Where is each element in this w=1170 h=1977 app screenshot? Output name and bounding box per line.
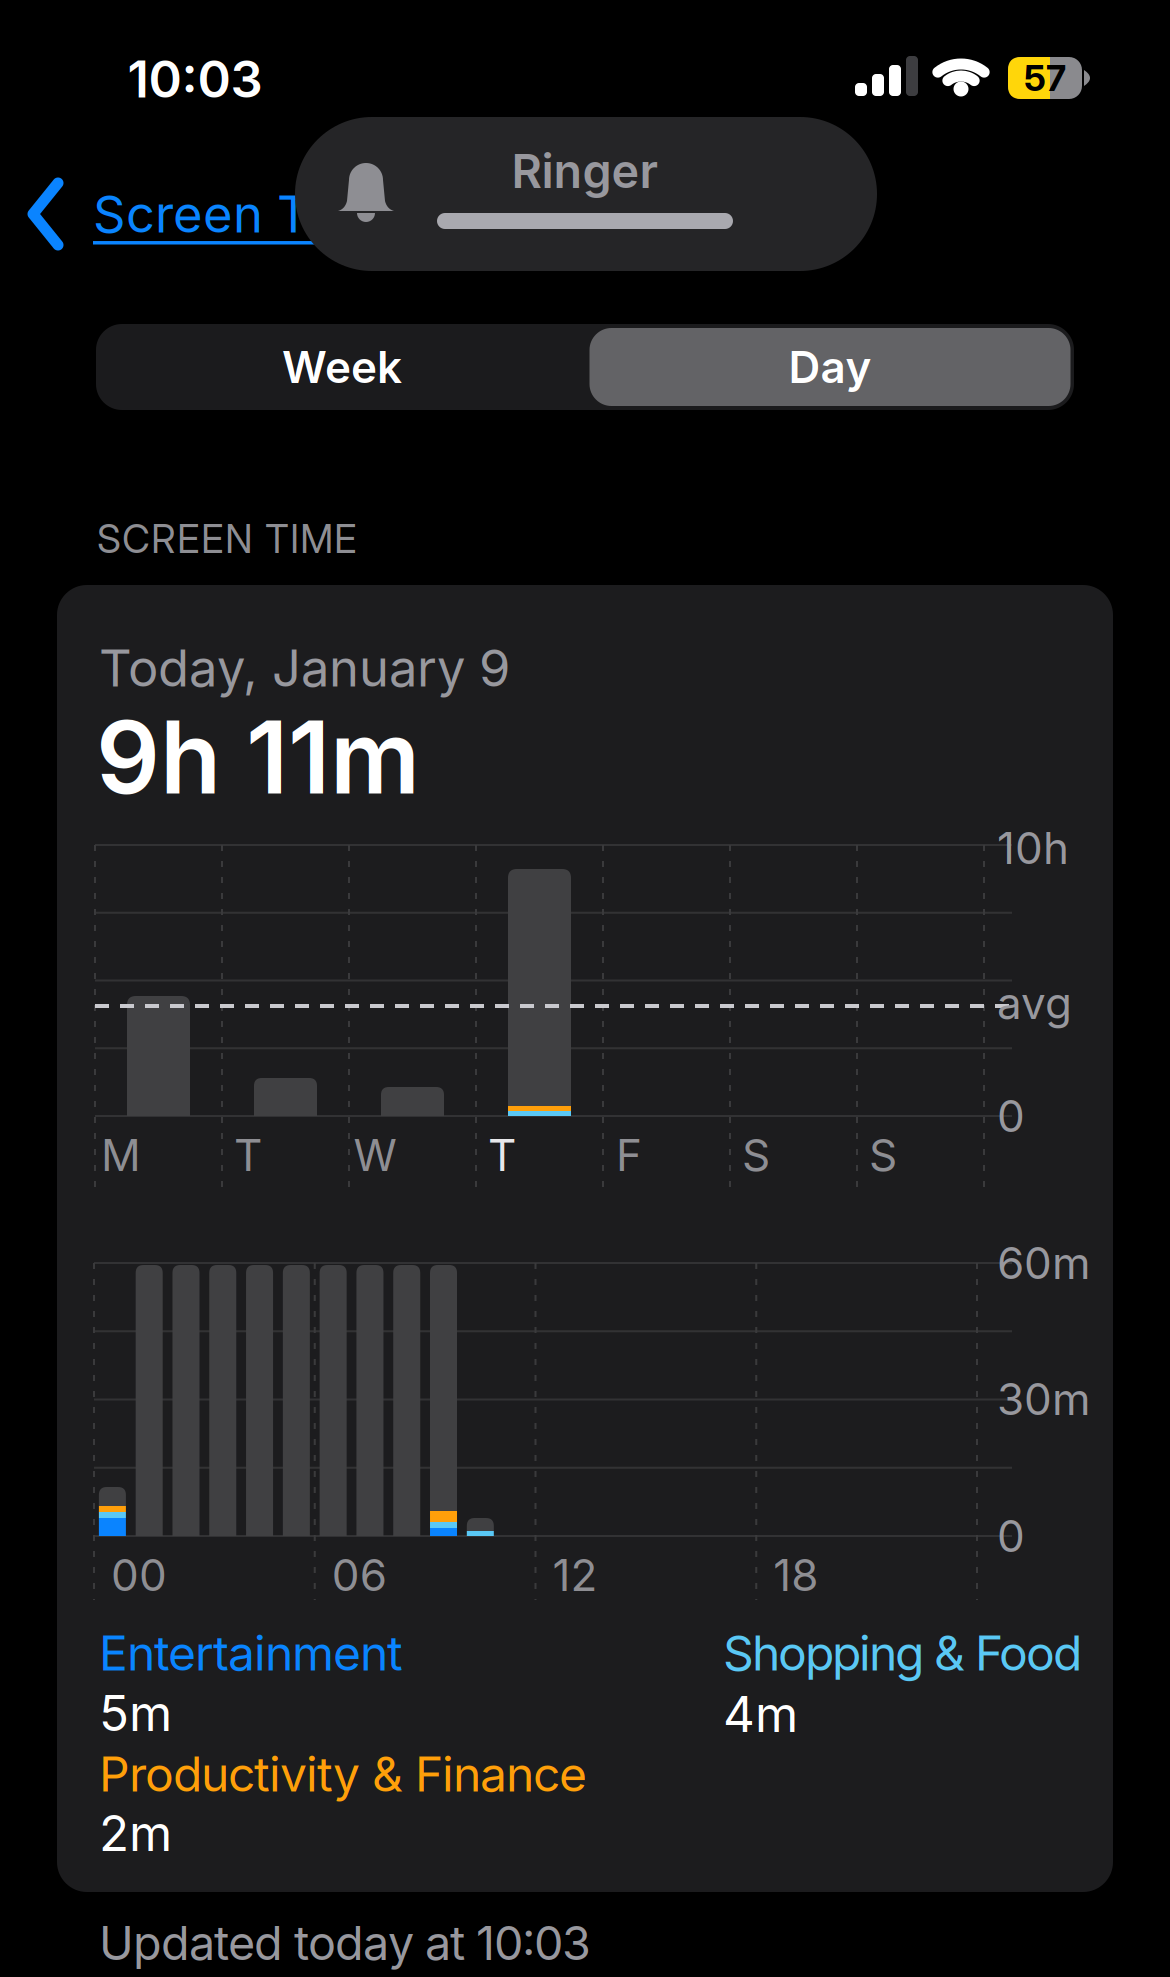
staticText: Updated today at 10:03 bbox=[99, 1915, 591, 1971]
staticText: Entertainment bbox=[99, 1625, 403, 1681]
staticText: S bbox=[742, 1129, 770, 1181]
staticText: 10h bbox=[997, 822, 1069, 874]
staticText: avg bbox=[997, 977, 1072, 1029]
staticText: M bbox=[101, 1129, 141, 1181]
staticText: 12 bbox=[552, 1549, 597, 1601]
staticText: 5m bbox=[99, 1684, 172, 1742]
button[interactable]: Screen Time bbox=[27, 164, 587, 264]
staticText: 57 bbox=[1024, 57, 1066, 99]
staticText: 06 bbox=[332, 1549, 387, 1601]
staticText: 2m bbox=[99, 1804, 172, 1862]
staticText: S bbox=[869, 1129, 897, 1181]
staticText: Productivity & Finance bbox=[99, 1746, 587, 1802]
staticText: 0 bbox=[997, 1090, 1025, 1142]
button[interactable]: Day bbox=[587, 324, 1072, 410]
staticText: 30m bbox=[997, 1373, 1091, 1425]
staticText: 60m bbox=[997, 1237, 1091, 1289]
staticText: T bbox=[234, 1129, 262, 1181]
staticText: F bbox=[616, 1129, 642, 1181]
staticText: Screen Time bbox=[93, 184, 396, 244]
staticText: 00 bbox=[111, 1549, 167, 1601]
staticText: W bbox=[353, 1129, 396, 1181]
staticText: Day bbox=[788, 341, 871, 393]
staticText: 18 bbox=[773, 1549, 818, 1601]
staticText: Ringer bbox=[511, 143, 658, 199]
staticText: Week bbox=[282, 341, 402, 393]
staticText: 4m bbox=[723, 1685, 798, 1743]
staticText: 9h 11m bbox=[96, 698, 420, 816]
staticText: T bbox=[488, 1129, 516, 1181]
staticText: 0 bbox=[997, 1510, 1025, 1562]
staticText: 10:03 bbox=[127, 49, 262, 109]
staticText: Today, January 9 bbox=[99, 638, 510, 698]
button[interactable]: Week bbox=[102, 324, 582, 410]
staticText: SCREEN TIME bbox=[97, 516, 357, 562]
staticText: Shopping & Food bbox=[723, 1625, 1082, 1681]
